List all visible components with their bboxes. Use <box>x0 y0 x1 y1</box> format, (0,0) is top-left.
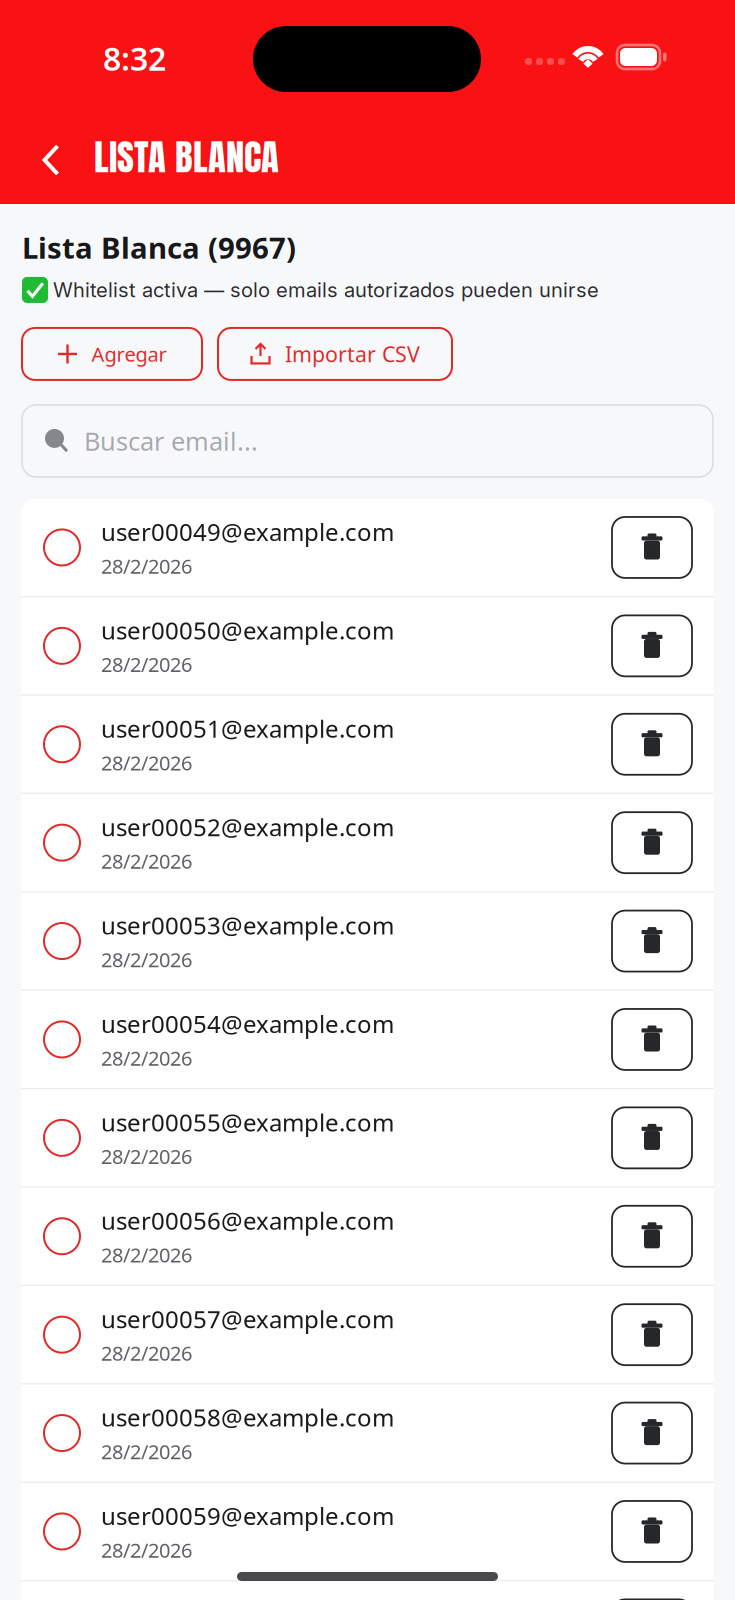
button[interactable]: Select user00052@example.com <box>21 794 101 891</box>
staticText: user00055@example.com <box>101 1106 394 1138</box>
button[interactable]: Delete user00060@example.com <box>612 1599 714 1600</box>
button[interactable]: Delete user00057@example.com <box>612 1304 714 1365</box>
staticText: Buscar email... <box>84 424 258 458</box>
button[interactable]: Select user00056@example.com <box>21 1188 101 1285</box>
button[interactable]: Select user00054@example.com <box>21 991 101 1088</box>
button[interactable]: Delete user00055@example.com <box>612 1107 714 1168</box>
button[interactable]: Delete user00053@example.com <box>612 911 714 972</box>
staticText: 28/2/2026 <box>101 1241 192 1268</box>
button[interactable]: Select user00050@example.com <box>21 597 101 694</box>
staticText: user00051@example.com <box>101 712 394 744</box>
button[interactable]: Delete user00059@example.com <box>612 1501 714 1562</box>
staticText: 28/2/2026 <box>101 848 192 874</box>
button[interactable]: Delete user00054@example.com <box>612 1009 714 1070</box>
button[interactable]: Importar CSV <box>218 328 452 380</box>
staticText: user00056@example.com <box>101 1204 394 1236</box>
button[interactable]: Delete user00051@example.com <box>612 714 714 775</box>
staticText: user00054@example.com <box>101 1008 394 1040</box>
staticText: Lista Blanca (9967) <box>22 228 296 267</box>
staticText: 8:32 <box>103 37 166 79</box>
staticText: user00052@example.com <box>101 811 394 843</box>
button[interactable]: Select user00049@example.com <box>21 499 101 596</box>
button[interactable]: Select user00051@example.com <box>21 696 101 793</box>
staticText: LISTA BLANCA <box>94 129 279 184</box>
button[interactable]: Delete user00049@example.com <box>612 517 714 578</box>
button[interactable]: Buscar email... <box>22 405 713 477</box>
button[interactable]: Select user00059@example.com <box>21 1483 101 1580</box>
staticText: user00050@example.com <box>101 614 394 646</box>
staticText: user00049@example.com <box>101 516 394 548</box>
button[interactable]: Select user00057@example.com <box>21 1286 101 1383</box>
staticText: 28/2/2026 <box>101 651 192 678</box>
staticText: 28/2/2026 <box>101 749 192 776</box>
staticText: 28/2/2026 <box>101 1537 192 1563</box>
button[interactable]: Delete user00058@example.com <box>612 1403 714 1464</box>
button[interactable]: Agregar <box>22 328 202 380</box>
button[interactable]: Select user00053@example.com <box>21 893 101 990</box>
staticText: Agregar <box>91 341 166 367</box>
staticText: 28/2/2026 <box>101 1438 192 1465</box>
staticText: 28/2/2026 <box>101 1340 192 1366</box>
button[interactable]: Delete user00052@example.com <box>612 812 714 873</box>
button[interactable]: Delete user00050@example.com <box>612 615 714 676</box>
staticText: user00053@example.com <box>101 909 394 941</box>
staticText: Importar CSV <box>285 340 420 368</box>
staticText: 28/2/2026 <box>101 1045 192 1071</box>
staticText: user00057@example.com <box>101 1303 394 1335</box>
staticText: user00058@example.com <box>101 1401 394 1433</box>
staticText: user00059@example.com <box>101 1500 394 1532</box>
button[interactable]: Select user00055@example.com <box>21 1089 101 1186</box>
button[interactable]: Back <box>21 129 81 191</box>
button[interactable]: Delete user00056@example.com <box>612 1206 714 1267</box>
staticText: 28/2/2026 <box>101 946 192 973</box>
staticText: Whitelist activa — solo emails autorizad… <box>53 278 599 302</box>
staticText: 28/2/2026 <box>101 553 192 579</box>
staticText: 28/2/2026 <box>101 1143 192 1170</box>
button[interactable]: Select user00058@example.com <box>21 1385 101 1482</box>
